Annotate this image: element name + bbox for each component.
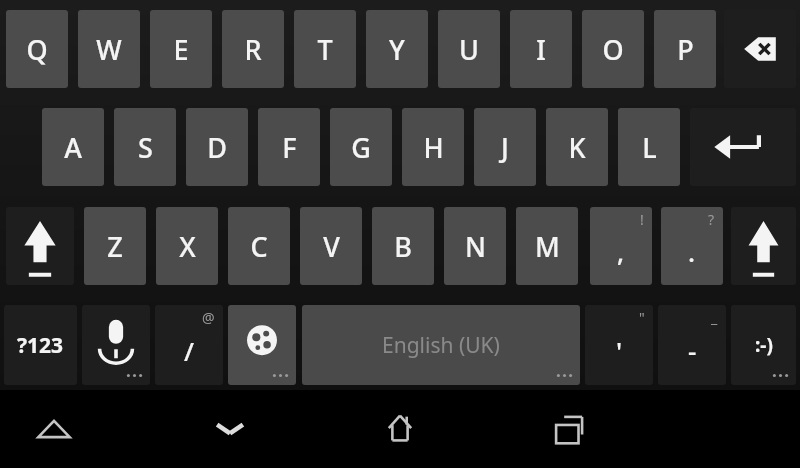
button[interactable]: H [402,108,464,186]
button[interactable]: O [582,10,644,88]
button[interactable]: Q [6,10,68,88]
button[interactable]: T [294,10,356,88]
staticText: M [535,228,560,265]
button[interactable]: V [300,207,362,285]
button[interactable]: F [258,108,320,186]
staticText: S [138,129,153,166]
button[interactable]: Shift [731,207,796,285]
button[interactable]: C [228,207,290,285]
button[interactable]: ? [661,207,723,285]
button[interactable]: W [78,10,140,88]
staticText: A [64,129,82,166]
button[interactable]: X [156,207,218,285]
staticText: W [96,31,122,68]
staticText: ? [708,210,715,229]
staticText: ' [616,333,623,368]
button[interactable]: _ [658,305,726,385]
button[interactable]: J [474,108,536,186]
button[interactable]: I [510,10,572,88]
staticText: " [639,308,645,327]
button[interactable]: N [444,207,506,285]
button[interactable]: Y [366,10,428,88]
button[interactable]: " [585,305,653,385]
staticText: Z [107,228,123,265]
staticText: _ [711,308,718,327]
staticText: . [688,234,696,269]
staticText: J [501,129,509,166]
button[interactable]: Voice input [82,305,150,385]
staticText: I [536,31,546,68]
staticText: / [184,333,195,368]
staticText: Y [389,31,405,68]
button[interactable]: Z [84,207,146,285]
button[interactable]: ?123 [4,305,77,385]
staticText: R [244,31,262,68]
button[interactable]: G [330,108,392,186]
staticText: H [423,129,444,166]
button[interactable]: Menu [26,402,82,456]
staticText: C [250,228,268,265]
button[interactable]: Hide keyboard [202,402,258,456]
staticText: O [602,31,624,68]
button[interactable]: Recents [542,402,598,456]
staticText: F [282,129,297,166]
button[interactable]: Change language [228,305,296,385]
button[interactable]: P [654,10,716,88]
staticText: - [688,333,697,368]
button[interactable]: Home [372,402,428,456]
button[interactable]: K [546,108,608,186]
button[interactable]: L [618,108,680,186]
staticText: :-) [755,332,773,358]
staticText: Q [26,31,48,68]
button[interactable]: D [186,108,248,186]
button[interactable]: R [222,10,284,88]
staticText: V [323,228,340,265]
staticText: X [179,228,196,265]
staticText: E [173,31,189,68]
staticText: ! [640,210,644,229]
staticText: P [677,31,694,68]
button[interactable]: :-) [731,305,796,385]
staticText: B [394,228,412,265]
button[interactable]: E [150,10,212,88]
button[interactable]: Shift [6,207,74,285]
staticText: K [568,129,586,166]
staticText: English (UK) [382,331,500,360]
staticText: G [351,129,371,166]
button[interactable]: U [438,10,500,88]
staticText: ?123 [17,331,64,360]
button[interactable]: English (UK) [302,305,580,385]
button[interactable]: M [516,207,578,285]
button[interactable]: A [42,108,104,186]
staticText: L [642,129,657,166]
button[interactable]: B [372,207,434,285]
staticText: T [317,31,333,68]
staticText: , [617,234,625,269]
button[interactable]: S [114,108,176,186]
staticText: N [465,228,486,265]
button[interactable]: @ [155,305,223,385]
staticText: @ [202,308,215,327]
staticText: U [459,31,479,68]
staticText: D [207,129,227,166]
button[interactable]: Backspace [724,10,796,88]
button[interactable]: Enter [690,108,796,186]
button[interactable]: ! [590,207,652,285]
